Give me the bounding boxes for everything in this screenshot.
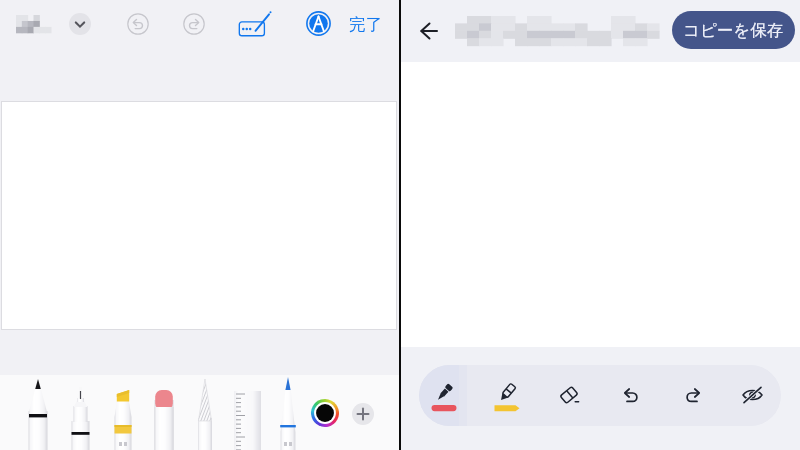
button[interactable]: File name <box>16 15 51 34</box>
button[interactable]: More <box>69 13 91 35</box>
button[interactable]: Color <box>311 399 339 427</box>
button[interactable]: Redo <box>183 13 205 35</box>
button[interactable]: Document title <box>455 16 671 46</box>
button[interactable]: Pen <box>419 365 469 426</box>
button[interactable]: Fine pen <box>64 378 98 450</box>
button[interactable]: Eraser <box>147 378 181 450</box>
button[interactable]: Markup <box>238 11 271 44</box>
button[interactable]: Blue pen <box>271 378 305 450</box>
button[interactable]: Highlighter <box>476 365 538 426</box>
staticText: コピーを保存 <box>683 20 784 41</box>
button[interactable]: Redo <box>662 365 724 426</box>
button[interactable]: Highlighter <box>106 378 140 450</box>
button[interactable]: Hide annotations <box>724 365 781 426</box>
button[interactable]: Undo <box>127 13 149 35</box>
button[interactable]: Undo <box>600 365 662 426</box>
button[interactable]: Ruler <box>231 378 265 450</box>
staticText: 完了 <box>349 14 382 35</box>
button[interactable]: Pen <box>22 378 56 450</box>
button[interactable]: コピーを保存 <box>672 11 795 49</box>
button[interactable]: Pencil <box>306 11 331 36</box>
button[interactable]: 完了 <box>349 13 383 35</box>
button[interactable]: Add <box>352 403 374 425</box>
button[interactable]: Eraser <box>538 365 600 426</box>
button[interactable]: Back <box>414 16 444 46</box>
button[interactable]: Lasso <box>189 378 223 450</box>
